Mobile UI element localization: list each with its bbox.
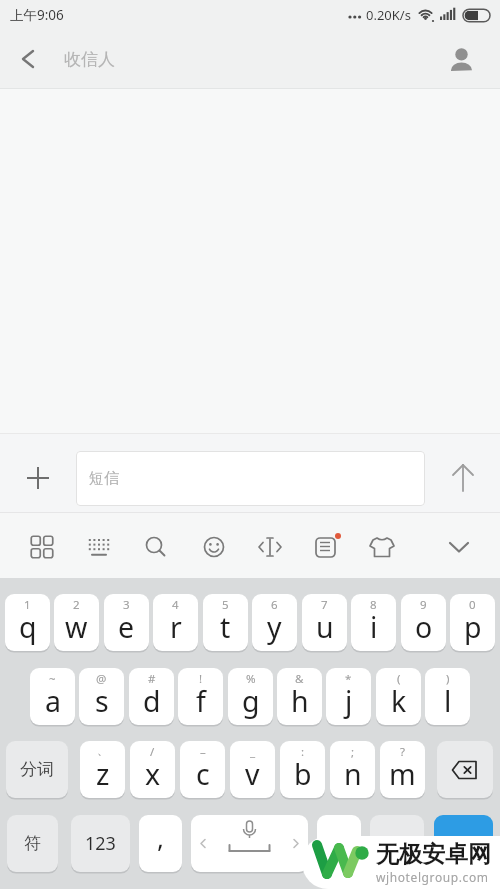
staticText: 6: [271, 597, 278, 613]
staticText: v: [245, 755, 260, 794]
staticText: x: [145, 755, 161, 794]
button[interactable]: –: [180, 741, 225, 798]
button[interactable]: ;: [330, 741, 375, 798]
staticText: 5: [222, 597, 229, 613]
staticText: t: [220, 608, 231, 647]
staticText: d: [143, 682, 161, 721]
button[interactable]: (: [376, 668, 421, 725]
staticText: p: [464, 608, 482, 647]
button[interactable]: [248, 525, 292, 569]
staticText: #: [148, 671, 156, 687]
button[interactable]: 2: [54, 594, 99, 651]
staticText: u: [316, 608, 334, 647]
staticText: 1: [24, 597, 31, 613]
staticText: 、: [97, 744, 109, 758]
staticText: 分词: [20, 759, 54, 780]
staticText: g: [242, 682, 260, 721]
button[interactable]: /: [130, 741, 175, 798]
staticText: w: [65, 608, 88, 647]
button[interactable]: #: [129, 668, 174, 725]
button[interactable]: :: [280, 741, 325, 798]
button[interactable]: [437, 741, 493, 798]
button[interactable]: ?: [380, 741, 425, 798]
staticText: h: [291, 682, 309, 721]
button[interactable]: 9: [401, 594, 446, 651]
staticText: 9: [420, 597, 427, 613]
staticText: m: [389, 755, 416, 794]
button[interactable]: _: [230, 741, 275, 798]
button[interactable]: *: [326, 668, 371, 725]
staticText: _: [250, 744, 256, 760]
button[interactable]: 8: [351, 594, 396, 651]
staticText: c: [196, 755, 210, 794]
button[interactable]: 分词: [6, 741, 68, 798]
button[interactable]: 1: [5, 594, 50, 651]
staticText: /: [150, 744, 155, 760]
staticText: 8: [370, 597, 377, 613]
staticText: i: [370, 608, 378, 647]
staticText: f: [196, 682, 206, 721]
button[interactable]: [444, 42, 478, 76]
staticText: j: [345, 682, 353, 721]
staticText: z: [96, 755, 110, 794]
button[interactable]: [304, 525, 348, 569]
button[interactable]: !: [178, 668, 223, 725]
staticText: 收信人: [64, 49, 115, 70]
button[interactable]: [191, 815, 308, 872]
button[interactable]: ~: [30, 668, 75, 725]
staticText: b: [294, 755, 312, 794]
button[interactable]: [8, 39, 48, 79]
staticText: &: [295, 671, 304, 687]
staticText: :: [301, 744, 305, 760]
button[interactable]: %: [228, 668, 273, 725]
button[interactable]: ,: [139, 815, 182, 872]
staticText: n: [344, 755, 362, 794]
button[interactable]: [0, 434, 76, 512]
staticText: 短信: [89, 469, 119, 488]
button[interactable]: 6: [252, 594, 297, 651]
staticText: @: [96, 671, 107, 687]
button[interactable]: [425, 434, 500, 512]
button[interactable]: [20, 525, 64, 569]
button[interactable]: 5: [203, 594, 248, 651]
staticText: ?: [400, 744, 405, 760]
button[interactable]: [134, 525, 178, 569]
staticText: 3: [123, 597, 130, 613]
button[interactable]: 、: [80, 741, 125, 798]
staticText: (: [397, 671, 401, 687]
staticText: 4: [172, 597, 179, 613]
staticText: ): [446, 671, 450, 687]
staticText: 7: [321, 597, 328, 613]
button[interactable]: [370, 815, 424, 872]
button[interactable]: 0: [450, 594, 495, 651]
staticText: o: [415, 608, 433, 647]
button[interactable]: 7: [302, 594, 347, 651]
staticText: e: [118, 608, 135, 647]
button[interactable]: [77, 525, 121, 569]
button[interactable]: @: [79, 668, 124, 725]
staticText: 符: [24, 833, 41, 854]
staticText: wjhotelgroup.com: [376, 869, 489, 885]
button[interactable]: [434, 815, 493, 872]
staticText: y: [267, 608, 282, 647]
button[interactable]: 123: [71, 815, 130, 872]
button[interactable]: ): [425, 668, 470, 725]
staticText: 上午9:06: [10, 6, 64, 24]
staticText: q: [19, 608, 37, 647]
button[interactable]: [317, 815, 361, 872]
staticText: r: [170, 608, 182, 647]
button[interactable]: 3: [104, 594, 149, 651]
staticText: ~: [49, 671, 56, 687]
staticText: k: [391, 682, 407, 721]
button[interactable]: [437, 525, 481, 569]
button[interactable]: 短信: [76, 451, 425, 506]
staticText: %: [246, 671, 256, 687]
button[interactable]: [192, 525, 236, 569]
button[interactable]: &: [277, 668, 322, 725]
button[interactable]: 无极安卓网: [302, 836, 500, 889]
staticText: a: [45, 682, 61, 721]
button[interactable]: 4: [153, 594, 198, 651]
staticText: s: [95, 682, 109, 721]
button[interactable]: 符: [7, 815, 58, 872]
button[interactable]: [360, 525, 404, 569]
